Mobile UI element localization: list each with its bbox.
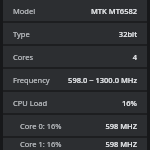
button[interactable]: Type [3,23,147,44]
button[interactable]: Core 1: 16% [3,138,147,150]
staticText: Type [13,29,30,39]
staticText: 598 MHZ [105,121,137,131]
staticText: Core 1: 16% [20,139,62,149]
staticText: 598.0 ~ 1300.0 MHz [68,75,137,85]
staticText: Frequency [13,75,50,85]
button[interactable]: CPU Load [3,92,147,113]
staticText: CPU Load [13,98,47,108]
staticText: Cores [13,52,34,62]
button[interactable]: Cores [3,46,147,67]
staticText: MTK MT6582 [90,6,137,16]
staticText: Core 0: 16% [20,121,62,131]
staticText: 598 MHZ [105,139,137,149]
button[interactable]: Frequency [3,69,147,90]
staticText: 4 [132,52,137,62]
button[interactable]: Core 0: 16% [3,115,147,136]
button[interactable]: Model [3,0,147,21]
staticText: 16% [122,98,137,108]
staticText: 32bit [118,29,137,39]
staticText: Model [13,6,36,16]
